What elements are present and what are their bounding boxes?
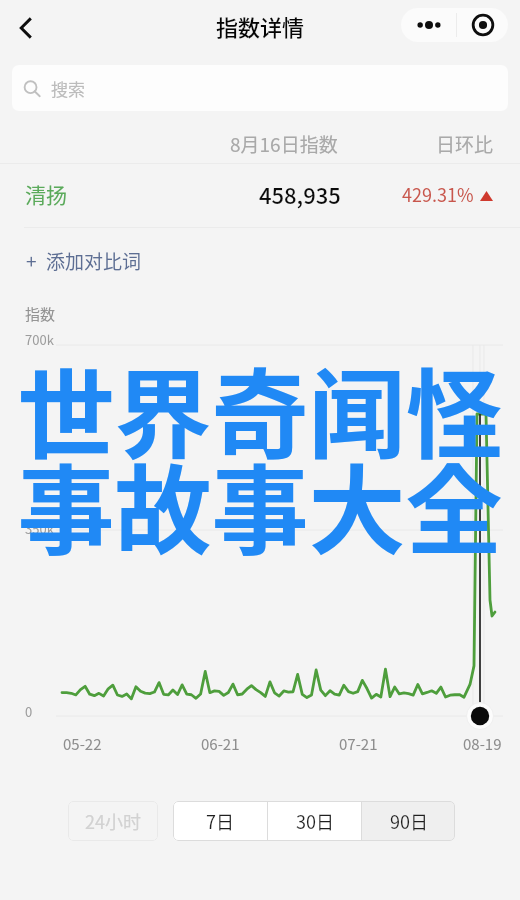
button[interactable]: Back [6,8,46,48]
staticText: 07-21 [339,733,378,755]
staticText: 24小时 [85,808,141,834]
staticText: 30日 [296,808,334,834]
staticText: 700k [25,330,54,349]
staticText: 指数 [25,303,56,325]
staticText: 世界奇闻怪 事故事大全 [0,337,520,574]
staticText: 7日 [206,808,234,834]
staticText: 指数详情 [216,10,305,42]
button[interactable]: Close mini program [457,8,508,42]
staticText: 搜索 [51,76,85,101]
staticText: 458,935 [259,178,341,210]
staticText: + [26,247,37,275]
staticText: 添加对比词 [46,247,142,275]
button[interactable]: 搜索 [12,65,508,111]
button[interactable]: + [26,242,142,280]
staticText: 日环比 [436,130,494,158]
button[interactable]: 90日 [362,801,455,841]
staticText: 08-19 [463,733,502,755]
staticText: 90日 [390,808,428,834]
staticText: 05-22 [63,733,102,755]
button[interactable]: 7日 [173,801,267,841]
staticText: 06-21 [201,733,240,755]
button[interactable]: More options [401,8,456,42]
button[interactable]: 30日 [268,801,361,841]
staticText: 0 [25,702,33,721]
button[interactable]: 清扬 [0,164,520,220]
staticText: 350k [25,519,54,538]
button[interactable]: 24小时 [68,801,158,841]
staticText: 429.31% [402,181,474,207]
staticText: 清扬 [25,179,67,209]
staticText: 8月16日指数 [230,130,338,158]
